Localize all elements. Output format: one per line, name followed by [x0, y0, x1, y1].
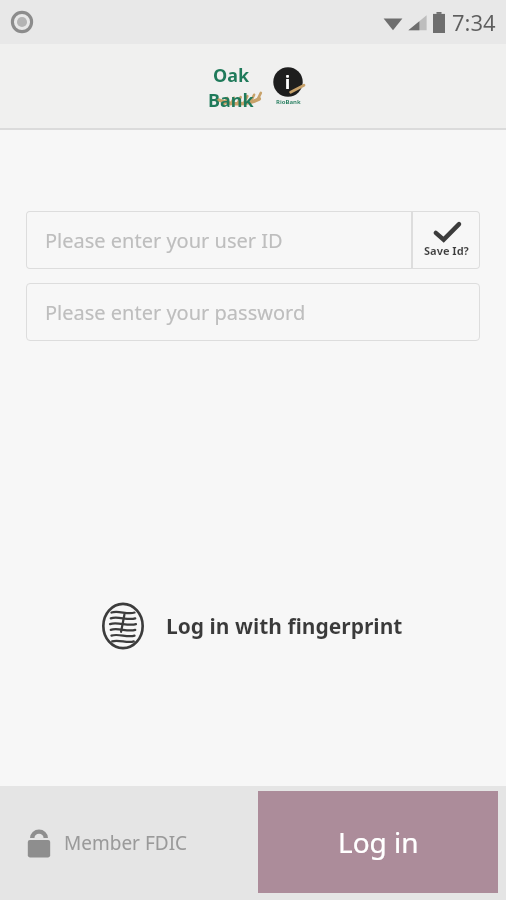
- staticText: Save Id?: [424, 243, 469, 258]
- staticText: Member FDIC: [64, 830, 188, 856]
- staticText: Log in: [338, 823, 419, 861]
- button[interactable]: Please enter your user ID: [26, 211, 412, 269]
- staticText: 7:34: [452, 7, 496, 37]
- staticText: Bank: [208, 88, 254, 109]
- button[interactable]: Log in with fingerprint: [95, 598, 407, 654]
- button[interactable]: Member FDIC: [26, 828, 188, 858]
- staticText: Please enter your password: [45, 299, 306, 326]
- staticText: Log in with fingerprint: [166, 612, 403, 641]
- staticText: RioBank: [276, 98, 301, 106]
- button[interactable]: Log in: [258, 791, 498, 893]
- button[interactable]: Save Id: [412, 211, 480, 269]
- staticText: Please enter your user ID: [45, 227, 283, 254]
- staticText: i: [285, 71, 291, 94]
- staticText: Oak: [213, 63, 250, 88]
- button[interactable]: Please enter your password: [26, 283, 480, 341]
